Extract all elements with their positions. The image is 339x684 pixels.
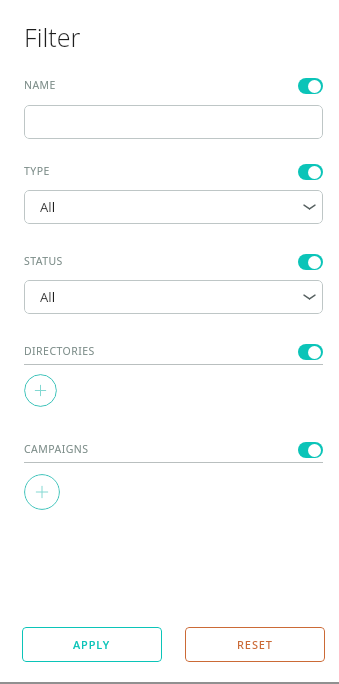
button[interactable]: Toggle DIRECTORIES filter [298,344,323,360]
staticText: APPLY [73,637,111,652]
button[interactable]: Toggle STATUS filter [298,254,323,270]
button[interactable]: Toggle NAME filter [298,78,323,94]
button[interactable]: Toggle CAMPAIGNS filter [298,442,323,458]
button[interactable]: CAMPAIGNS [24,442,89,456]
button[interactable]: RESET [185,627,325,662]
staticText: Filter [24,20,81,54]
button[interactable]: TYPE [24,164,50,178]
button[interactable]: Add campaign [24,474,60,510]
button[interactable]: Name [24,105,323,139]
button[interactable]: NAME [24,78,56,92]
button[interactable]: Add directory [24,374,57,407]
button[interactable]: Status: All [24,280,323,314]
staticText: All [40,198,56,216]
button[interactable]: Toggle TYPE filter [298,164,323,180]
button[interactable]: Type: All [24,190,323,224]
staticText: RESET [237,637,273,652]
button[interactable]: DIRECTORIES [24,344,95,358]
button[interactable]: STATUS [24,254,63,268]
button[interactable]: APPLY [22,627,162,662]
staticText: All [40,288,56,306]
